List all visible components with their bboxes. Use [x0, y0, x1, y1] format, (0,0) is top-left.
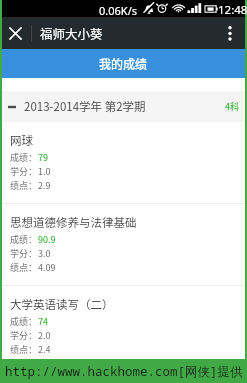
- staticText: 1.0: [38, 165, 51, 178]
- staticText: 绩点：: [10, 261, 38, 274]
- staticText: 12:48: [218, 2, 247, 18]
- staticText: 90.9: [38, 233, 56, 246]
- staticText: 思想道德修养与法律基础: [10, 214, 137, 231]
- button[interactable]: 网球: [2, 122, 245, 203]
- staticText: 79: [38, 151, 48, 164]
- staticText: 绩点：: [10, 343, 38, 356]
- staticText: 2013-2014学年 第2学期: [24, 98, 146, 115]
- staticText: 3.0: [38, 247, 51, 260]
- staticText: 绩点：: [10, 179, 38, 192]
- staticText: 2.4: [38, 343, 51, 356]
- staticText: 4.09: [38, 261, 56, 274]
- staticText: 大学英语读写（二）: [10, 296, 114, 313]
- staticText: 0.06K/s: [99, 3, 137, 18]
- staticText: 网球: [10, 132, 33, 149]
- staticText: 2.0: [38, 329, 51, 342]
- staticText: 2.9: [38, 179, 51, 192]
- button[interactable]: 思想道德修养与法律基础: [2, 204, 245, 285]
- staticText: 成绩：: [10, 233, 38, 246]
- staticText: 成绩：: [10, 315, 38, 328]
- staticText: 我的成绩: [99, 55, 148, 72]
- staticText: 福师大小葵: [40, 24, 103, 42]
- staticText: 学分：: [10, 329, 38, 342]
- staticText: http://www.hackhome.com[网侠]提供: [5, 363, 243, 380]
- button[interactable]: Close: [2, 17, 31, 49]
- staticText: 4科: [225, 100, 239, 113]
- button[interactable]: 我的成绩: [2, 49, 245, 78]
- staticText: 学分：: [10, 165, 38, 178]
- button[interactable]: 2013-2014学年 第2学期: [2, 91, 245, 122]
- staticText: 成绩：: [10, 151, 38, 164]
- button[interactable]: 大学英语读写（二）: [2, 286, 245, 359]
- staticText: 74: [38, 315, 48, 328]
- staticText: 学分：: [10, 247, 38, 260]
- button[interactable]: More options: [216, 17, 245, 49]
